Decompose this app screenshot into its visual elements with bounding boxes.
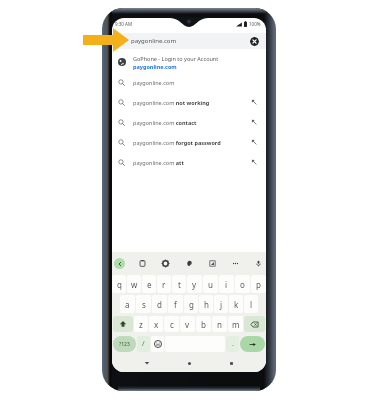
button[interactable]: z (134, 316, 148, 332)
button[interactable]: u (203, 275, 218, 293)
button[interactable]: Home (182, 356, 196, 370)
staticText: t (178, 279, 181, 290)
staticText: v (185, 319, 190, 330)
button[interactable]: Shift (113, 316, 133, 332)
staticText: o (240, 279, 245, 290)
button[interactable]: More (230, 258, 241, 269)
button[interactable]: Clipboard (137, 258, 148, 269)
button[interactable]: b (196, 316, 211, 332)
staticText: q (117, 279, 122, 290)
button[interactable]: paygonline.com (112, 72, 266, 92)
staticText: paygonline.com att (133, 159, 184, 166)
button[interactable]: c (164, 316, 179, 332)
staticText: paygonline.com not working (133, 99, 210, 106)
button[interactable]: p (251, 275, 266, 293)
staticText: k (234, 299, 239, 310)
button[interactable]: l (244, 295, 258, 313)
staticText: paygonline.com (131, 37, 177, 45)
staticText: d (157, 299, 162, 310)
staticText: ?123 (119, 341, 130, 348)
staticText: g (189, 299, 194, 310)
button[interactable]: y (187, 275, 202, 293)
staticText: f (174, 299, 177, 310)
button[interactable]: Emoji (151, 336, 164, 352)
button[interactable]: k (229, 295, 243, 313)
staticText: z (139, 319, 143, 330)
staticText: h (204, 299, 209, 310)
button[interactable]: Voice input (253, 258, 264, 269)
button[interactable]: Translate (207, 258, 218, 269)
button[interactable]: n (212, 316, 227, 332)
button[interactable]: paygonline.com contact (112, 112, 266, 132)
staticText: u (208, 279, 213, 290)
staticText: . (232, 339, 234, 349)
button[interactable]: paygonline.com (112, 33, 266, 49)
staticText: m (232, 319, 240, 330)
staticText: l (250, 299, 253, 310)
button[interactable]: j (214, 295, 228, 313)
staticText: paygonline.com contact (133, 119, 197, 126)
button[interactable]: d (152, 295, 167, 313)
staticText: r (162, 279, 166, 290)
button[interactable]: paygonline.com not working (112, 92, 266, 112)
button[interactable]: Recents (224, 356, 238, 370)
staticText: 9:30 AM (115, 21, 133, 27)
button[interactable]: t (172, 275, 186, 293)
staticText: / (142, 339, 145, 349)
staticText: s (142, 299, 146, 310)
button[interactable]: x (149, 316, 163, 332)
button[interactable]: Enter (240, 336, 265, 352)
staticText: n (217, 319, 222, 330)
button[interactable]: GoPhone - Login to your Account (112, 52, 266, 72)
staticText: c (170, 319, 174, 330)
staticText: y (192, 279, 197, 290)
staticText: paygonline.com (133, 63, 177, 70)
staticText: a (125, 299, 130, 310)
button[interactable]: a (120, 295, 135, 313)
button[interactable]: Back (140, 356, 154, 370)
staticText: GoPhone - Login to your Account (133, 55, 219, 62)
staticText: e (147, 279, 152, 290)
button[interactable]: . (226, 336, 239, 352)
button[interactable]: g (184, 295, 198, 313)
staticText: w (131, 279, 138, 290)
staticText: i (225, 279, 228, 290)
button[interactable]: Stickers (184, 258, 195, 269)
button[interactable]: Clear (250, 37, 259, 46)
staticText: paygonline.com forgot password (133, 139, 221, 146)
button[interactable]: v (180, 316, 195, 332)
staticText: x (154, 319, 159, 330)
button[interactable]: Backspace (244, 316, 265, 332)
staticText: p (256, 279, 261, 290)
button[interactable]: i (219, 275, 234, 293)
staticText: 100% (249, 21, 261, 27)
button[interactable]: / (137, 336, 150, 352)
staticText: paygonline.com (133, 79, 175, 86)
button[interactable]: s (136, 295, 151, 313)
button[interactable]: paygonline.com att (112, 152, 266, 172)
button[interactable]: e (142, 275, 156, 293)
button[interactable]: h (199, 295, 213, 313)
button[interactable]: w (127, 275, 141, 293)
button[interactable]: f (168, 295, 183, 313)
button[interactable]: r (157, 275, 171, 293)
staticText: j (220, 299, 223, 310)
button[interactable]: Back (114, 258, 125, 269)
staticText: b (201, 319, 206, 330)
button[interactable]: ?123 (113, 336, 136, 352)
button[interactable]: o (235, 275, 250, 293)
button[interactable]: m (228, 316, 243, 332)
button[interactable]: Settings (160, 258, 171, 269)
button[interactable]: q (112, 275, 126, 293)
button[interactable]: paygonline.com forgot password (112, 132, 266, 152)
